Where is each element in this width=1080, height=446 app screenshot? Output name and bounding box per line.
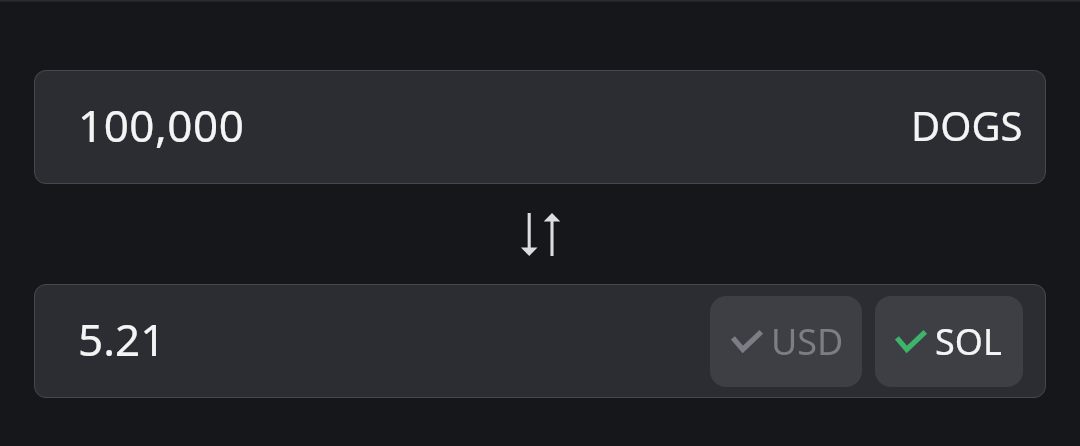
button[interactable]: Swap direction xyxy=(504,198,576,270)
button[interactable]: 5.21 xyxy=(34,284,1046,398)
staticText: SOL xyxy=(935,317,1002,366)
staticText: USD xyxy=(771,317,844,366)
button[interactable]: 100,000 xyxy=(34,70,1046,184)
staticText: 100,000 xyxy=(78,95,245,155)
button[interactable]: SOL xyxy=(875,296,1023,387)
staticText: DOGS xyxy=(911,98,1023,152)
staticText: 5.21 xyxy=(78,309,166,369)
button[interactable]: USD xyxy=(710,296,862,387)
